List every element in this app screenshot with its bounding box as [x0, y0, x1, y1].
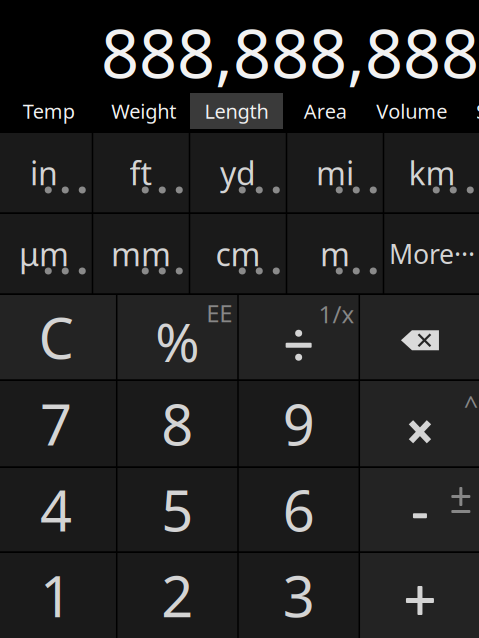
staticText: 4: [40, 473, 72, 547]
button[interactable]: 3: [239, 553, 359, 638]
button[interactable]: Clear: [0, 295, 116, 379]
button[interactable]: Subtract: [360, 468, 479, 551]
staticText: 9: [283, 387, 315, 461]
button[interactable]: ft: [93, 133, 189, 212]
staticText: 3: [283, 558, 315, 633]
button[interactable]: in: [0, 133, 92, 212]
button[interactable]: Percent: [117, 295, 237, 379]
button[interactable]: 8: [117, 381, 237, 466]
button[interactable]: Volume: [367, 93, 456, 129]
staticText: 2: [161, 558, 193, 633]
button[interactable]: 5: [117, 468, 237, 551]
staticText: Volume: [376, 98, 447, 124]
button[interactable]: mm: [93, 214, 189, 293]
staticText: 7: [40, 387, 72, 461]
staticText: %: [155, 306, 199, 377]
staticText: 6: [283, 473, 315, 547]
button[interactable]: μm: [0, 214, 92, 293]
button[interactable]: 4: [0, 468, 116, 551]
staticText: More···: [389, 236, 475, 271]
staticText: mi: [316, 151, 354, 194]
staticText: C: [39, 300, 74, 374]
button[interactable]: km: [384, 133, 479, 212]
button[interactable]: Add: [360, 553, 479, 638]
staticText: m: [320, 232, 350, 275]
staticText: Length: [204, 98, 268, 124]
button[interactable]: Divide: [239, 295, 359, 379]
button[interactable]: Weight: [97, 93, 190, 129]
staticText: ft: [129, 151, 152, 194]
staticText: EE: [206, 297, 232, 329]
staticText: 1/x: [319, 298, 355, 330]
button[interactable]: yd: [190, 133, 286, 212]
button[interactable]: mi: [287, 133, 383, 212]
button[interactable]: 2: [117, 553, 237, 638]
button[interactable]: Temp: [0, 93, 97, 129]
button[interactable]: Multiply: [360, 381, 479, 466]
staticText: cm: [215, 232, 260, 275]
staticText: 1: [40, 558, 72, 633]
staticText: 5: [161, 473, 193, 547]
staticText: in: [30, 151, 58, 194]
staticText: 888,888,888: [101, 8, 479, 97]
button[interactable]: Length: [190, 93, 283, 129]
button[interactable]: 9: [239, 381, 359, 466]
staticText: Speed: [476, 98, 479, 124]
staticText: Area: [304, 98, 347, 124]
staticText: ^: [464, 388, 478, 422]
button[interactable]: More···: [384, 214, 479, 293]
staticText: Temp: [23, 98, 75, 124]
staticText: Weight: [111, 98, 176, 124]
button[interactable]: cm: [190, 214, 286, 293]
button[interactable]: Speed: [456, 93, 479, 129]
button[interactable]: 6: [239, 468, 359, 551]
staticText: km: [408, 151, 455, 194]
staticText: mm: [111, 232, 171, 275]
staticText: yd: [220, 151, 256, 194]
staticText: 8: [161, 387, 193, 461]
staticText: μm: [19, 232, 69, 275]
button[interactable]: m: [287, 214, 383, 293]
button[interactable]: 1: [0, 553, 116, 638]
button[interactable]: 7: [0, 381, 116, 466]
button[interactable]: Delete: [360, 295, 479, 379]
button[interactable]: Area: [283, 93, 367, 129]
